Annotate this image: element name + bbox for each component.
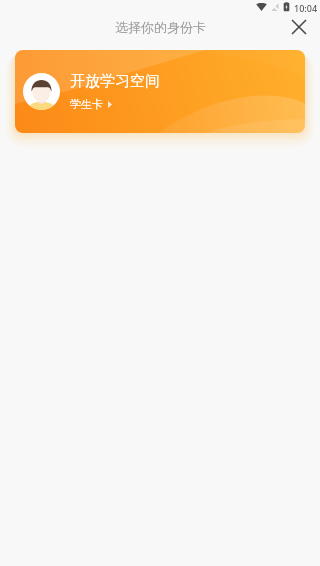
button[interactable]: Close [285,13,313,41]
button[interactable]: 开放学习空间 [15,50,305,133]
staticText: 选择你的身份卡 [115,19,206,35]
staticText: 10:04 [294,2,318,14]
staticText: 开放学习空间 [70,72,160,91]
staticText: 学生卡 [70,97,103,111]
